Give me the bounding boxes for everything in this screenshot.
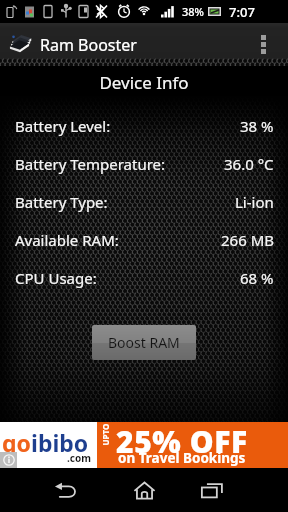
staticText: .com — [67, 451, 91, 465]
button[interactable]: Recent apps — [184, 468, 240, 512]
staticText: ibibo — [31, 427, 89, 458]
staticText: 36.0 °C — [224, 154, 274, 174]
staticText: 68 % — [240, 268, 274, 288]
staticText: Device Info — [0, 71, 288, 94]
staticText: Battery Type: — [15, 192, 108, 212]
staticText: UPTO — [99, 423, 110, 445]
staticText: 266 MB — [221, 230, 274, 250]
button[interactable]: go — [0, 422, 288, 468]
staticText: CPU Usage: — [15, 268, 97, 288]
staticText: Battery Temperature: — [15, 154, 166, 174]
staticText: on Travel Bookings — [118, 449, 246, 467]
staticText: Boost RAM — [108, 333, 180, 352]
staticText: 38 % — [240, 116, 274, 136]
staticText: 7:07 — [229, 3, 255, 21]
staticText: go — [2, 427, 31, 458]
staticText: 25% OFF — [116, 421, 248, 462]
button[interactable]: Back — [38, 468, 94, 512]
staticText: 38% — [182, 4, 204, 19]
button[interactable]: More options — [238, 23, 288, 66]
button[interactable]: Home — [116, 468, 172, 512]
staticText: Ram Booster — [40, 34, 137, 56]
staticText: Battery Level: — [15, 116, 111, 136]
staticText: Li-ion — [235, 192, 274, 212]
button[interactable]: Boost RAM — [92, 325, 196, 360]
staticText: Available RAM: — [15, 230, 119, 250]
